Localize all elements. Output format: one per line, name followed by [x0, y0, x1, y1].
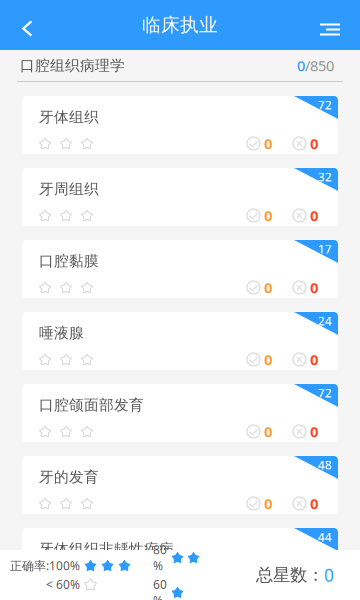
- staticText: 0: [264, 278, 272, 297]
- staticText: 牙体组织: [39, 108, 99, 126]
- staticText: 0: [264, 422, 272, 441]
- staticText: 0: [310, 494, 318, 513]
- staticText: 44: [318, 529, 332, 545]
- staticText: 72: [318, 385, 332, 401]
- staticText: < 60%: [46, 576, 80, 592]
- staticText: 48: [318, 457, 332, 473]
- staticText: 0: [324, 563, 334, 586]
- staticText: 0: [264, 494, 272, 513]
- button[interactable]: 口腔黏膜: [22, 240, 338, 298]
- button[interactable]: 唾液腺: [22, 312, 338, 370]
- staticText: 0: [310, 206, 318, 225]
- staticText: 0: [310, 422, 318, 441]
- button[interactable]: 牙体组织非龋性疾病: [22, 528, 338, 586]
- staticText: 0: [297, 56, 305, 75]
- staticText: 口腔组织病理学: [20, 56, 125, 74]
- staticText: 临床执业: [142, 13, 218, 36]
- staticText: 0: [264, 350, 272, 369]
- staticText: 60%: [153, 576, 167, 600]
- staticText: 牙体组织非龋性疾病: [39, 540, 174, 558]
- button[interactable]: 口腔颌面部发育: [22, 384, 338, 442]
- button[interactable]: Menu: [306, 0, 360, 50]
- staticText: 口腔颌面部发育: [39, 396, 144, 414]
- staticText: 0: [264, 566, 272, 585]
- staticText: 80%: [153, 542, 167, 573]
- button[interactable]: 牙周组织: [22, 168, 338, 226]
- staticText: 口腔黏膜: [39, 252, 99, 270]
- staticText: 牙周组织: [39, 180, 99, 198]
- staticText: 正确率:100%: [10, 558, 80, 573]
- staticText: 总星数：: [256, 564, 324, 586]
- staticText: 24: [318, 313, 332, 329]
- staticText: 0: [310, 134, 318, 153]
- staticText: 0: [264, 134, 272, 153]
- staticText: 牙的发育: [39, 468, 99, 486]
- staticText: 0: [310, 350, 318, 369]
- button[interactable]: 牙的发育: [22, 456, 338, 514]
- staticText: 17: [318, 241, 332, 257]
- staticText: 唾液腺: [39, 324, 84, 342]
- staticText: 0: [310, 566, 318, 585]
- staticText: /850: [305, 56, 334, 75]
- button[interactable]: Back: [0, 0, 47, 50]
- staticText: 72: [318, 97, 332, 113]
- staticText: 0: [264, 206, 272, 225]
- staticText: 32: [318, 169, 332, 185]
- button[interactable]: 牙体组织: [22, 96, 338, 154]
- staticText: 0: [310, 278, 318, 297]
